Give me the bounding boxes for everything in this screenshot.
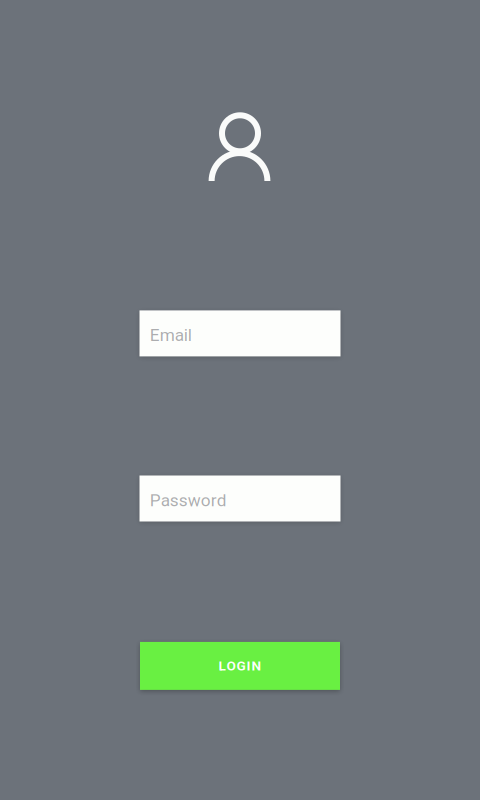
staticText: L O G I N	[218, 658, 261, 674]
button[interactable]: L O G I N	[140, 642, 340, 690]
button[interactable]: Password	[139, 475, 340, 521]
staticText: Password	[150, 490, 227, 510]
staticText: Email	[150, 325, 192, 345]
button[interactable]: Email	[139, 310, 340, 356]
